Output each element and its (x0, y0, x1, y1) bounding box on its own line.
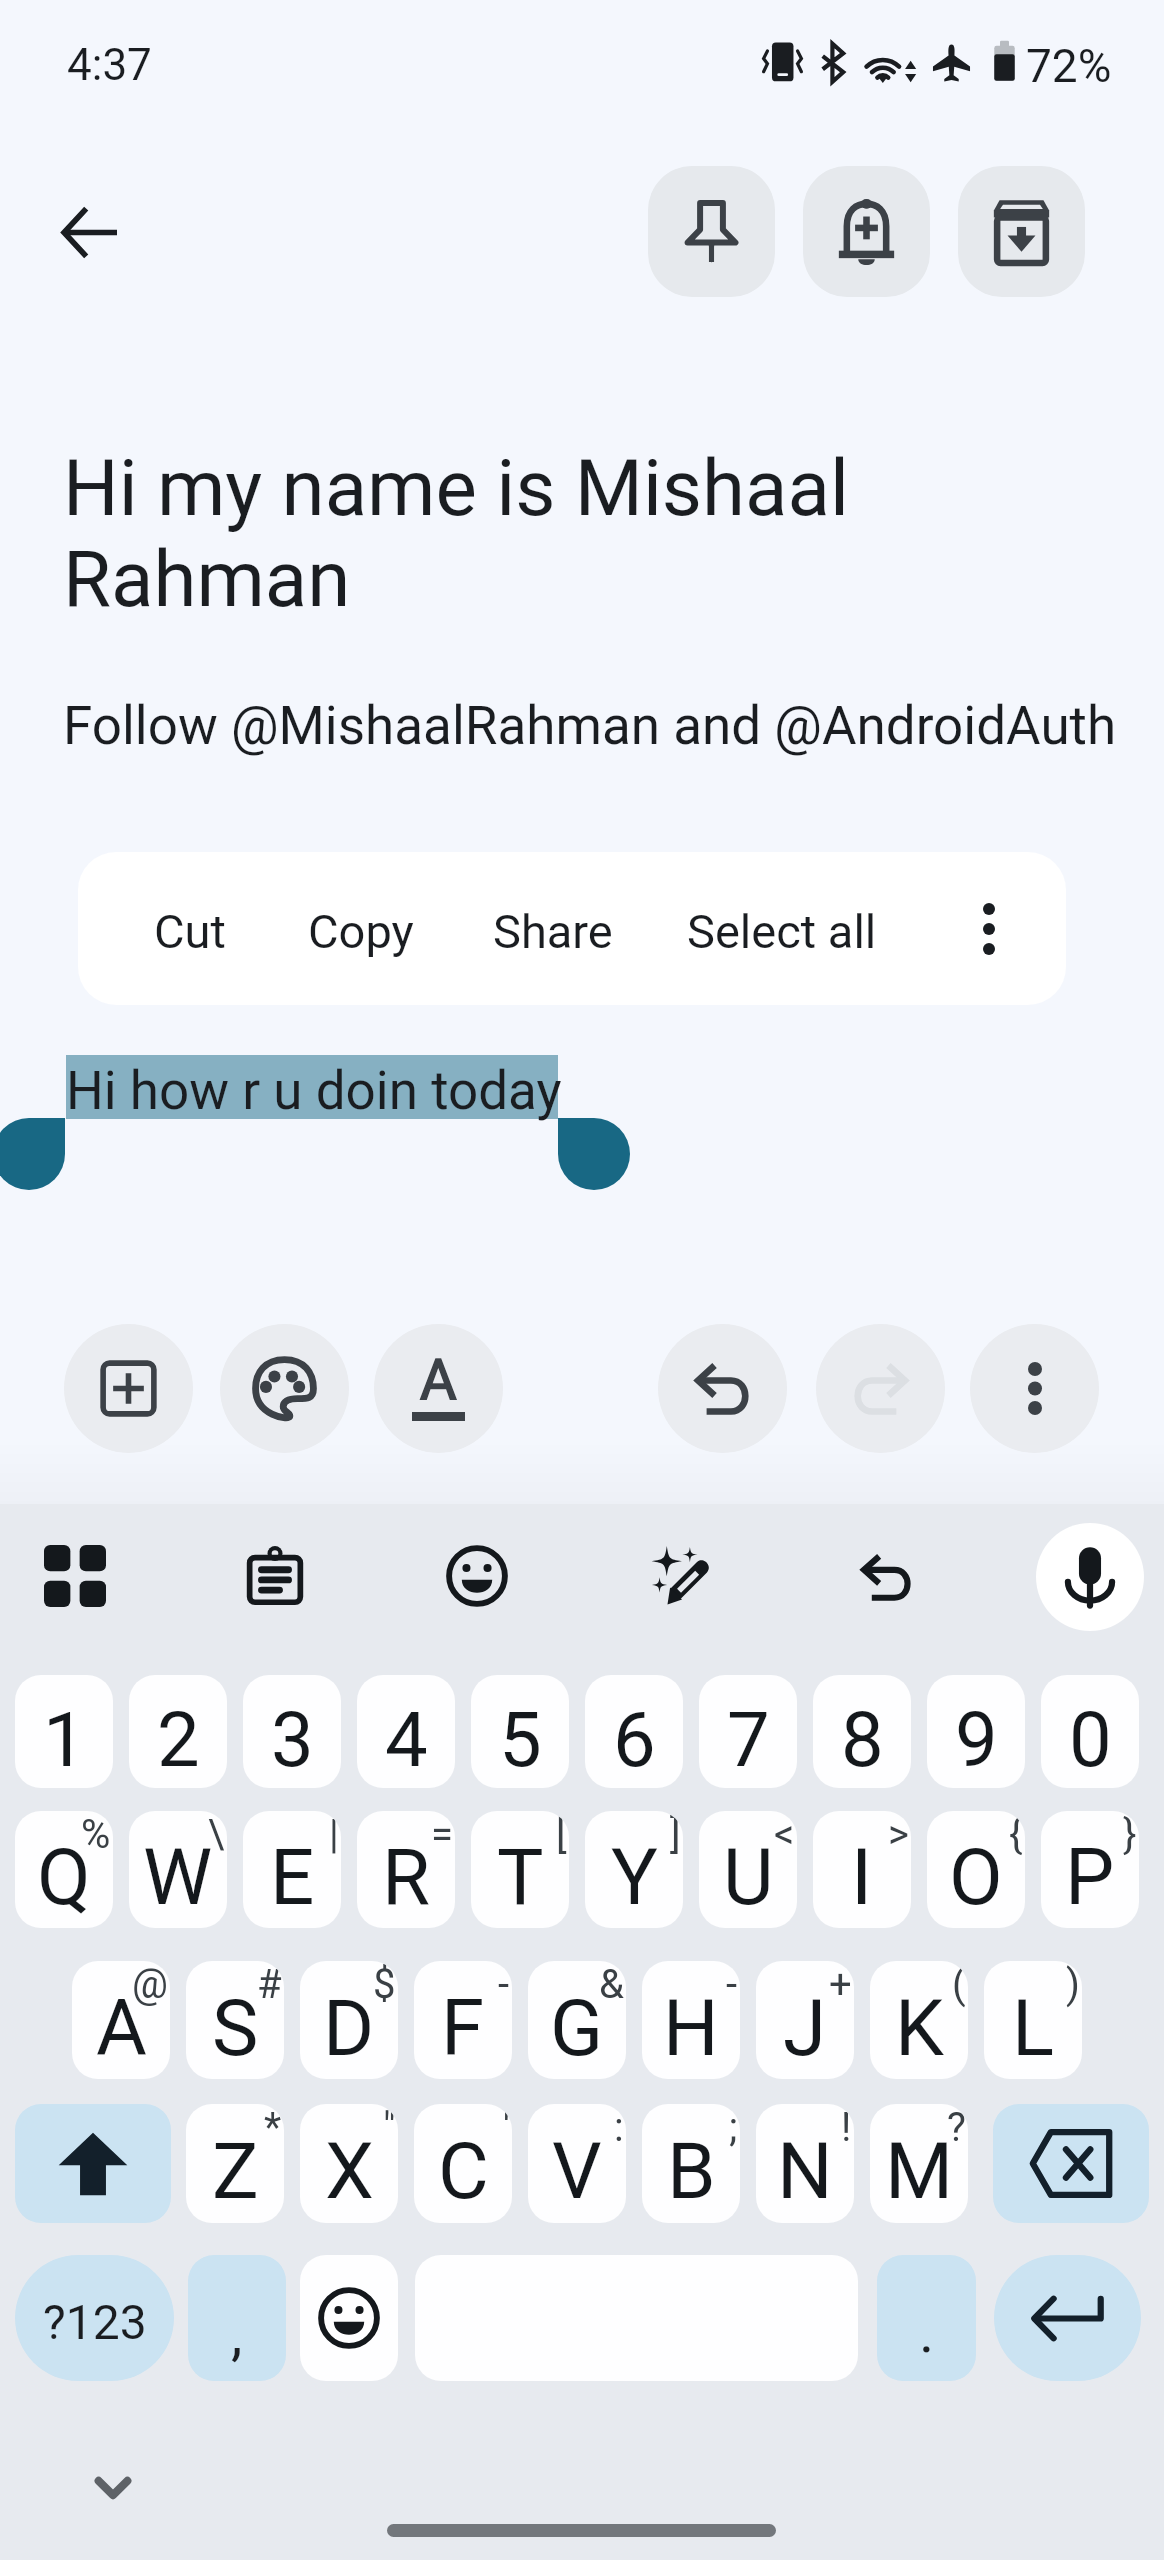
button[interactable]: More (970, 1324, 1099, 1453)
button[interactable]: Emoji (423, 1522, 531, 1630)
staticText: ?123 (43, 2294, 147, 2350)
button[interactable]: Magic compose (627, 1522, 735, 1630)
staticText: 0 (1069, 1695, 1112, 1784)
button[interactable]: Archive (958, 166, 1085, 297)
button[interactable]: C (414, 2104, 512, 2223)
staticText: ) (1066, 1961, 1080, 2008)
button[interactable]: P (1041, 1811, 1139, 1928)
staticText: Q (37, 1832, 91, 1923)
button[interactable]: D (300, 1961, 398, 2079)
button[interactable]: Hide keyboard (68, 2443, 158, 2533)
button[interactable]: 8 (813, 1675, 911, 1788)
button[interactable]: Formatting (374, 1324, 503, 1453)
button[interactable]: H (642, 1961, 740, 2079)
button[interactable]: Undo (658, 1324, 787, 1453)
staticText: M (885, 2126, 954, 2217)
button[interactable]: Select all (667, 852, 897, 1005)
button[interactable]: Add (64, 1324, 193, 1453)
button[interactable]: X (300, 2104, 398, 2223)
button[interactable]: Shift (15, 2104, 171, 2223)
button[interactable]: 0 (1041, 1675, 1139, 1788)
staticText: \ (208, 1811, 225, 1858)
button[interactable]: A (72, 1961, 170, 2079)
button[interactable]: Back (40, 182, 140, 282)
staticText: > (888, 1811, 909, 1858)
button[interactable]: 6 (585, 1675, 683, 1788)
button[interactable]: Emoji (300, 2255, 398, 2381)
button[interactable]: Enter (994, 2255, 1141, 2381)
button[interactable]: G (528, 1961, 626, 2079)
staticText: W (143, 1832, 213, 1923)
button[interactable]: 1 (15, 1675, 113, 1788)
staticText: O (949, 1832, 1003, 1923)
staticText: ( (952, 1961, 966, 2008)
button[interactable]: Reminder (803, 166, 930, 297)
button[interactable]: K (870, 1961, 968, 2079)
button[interactable]: Y (585, 1811, 683, 1928)
button[interactable]: More options (935, 852, 1043, 1005)
staticText: Z (212, 2126, 259, 2217)
button[interactable]: , (188, 2255, 286, 2381)
button[interactable]: S (186, 1961, 284, 2079)
button[interactable]: 7 (699, 1675, 797, 1788)
staticText: Follow @MishaalRahman and @AndroidAuth (63, 695, 1117, 757)
staticText: , (231, 2300, 243, 2368)
staticText: ! (841, 2104, 852, 2151)
button[interactable]: Backspace (993, 2104, 1149, 2223)
button[interactable]: I (813, 1811, 911, 1928)
staticText: @ (132, 1961, 168, 2008)
button[interactable]: W (129, 1811, 227, 1928)
button[interactable]: Pin (648, 166, 775, 297)
button[interactable]: Voice input (1036, 1523, 1144, 1631)
button[interactable]: L (984, 1961, 1082, 2079)
button[interactable]: 2 (129, 1675, 227, 1788)
staticText: $ (373, 1961, 396, 2008)
button[interactable]: 4 (357, 1675, 455, 1788)
button[interactable]: T (471, 1811, 569, 1928)
staticText: . (919, 2298, 935, 2366)
button[interactable]: Apps (21, 1522, 129, 1630)
button[interactable]: Copy (286, 852, 435, 1005)
button[interactable]: Clipboard (221, 1522, 329, 1630)
button[interactable]: N (756, 2104, 854, 2223)
button[interactable]: J (756, 1961, 854, 2079)
button[interactable]: Q (15, 1811, 113, 1928)
staticText: H (663, 1983, 719, 2074)
button[interactable]: 9 (927, 1675, 1025, 1788)
button[interactable]: V (528, 2104, 626, 2223)
staticText: 8 (841, 1695, 884, 1784)
button[interactable]: Z (186, 2104, 284, 2223)
button[interactable]: F (414, 1961, 512, 2079)
button[interactable]: M (870, 2104, 968, 2223)
staticText: ' (503, 2104, 510, 2151)
staticText: I (851, 1832, 873, 1923)
button[interactable]: ?123 (15, 2255, 174, 2381)
staticText: N (777, 2126, 833, 2217)
button[interactable]: U (699, 1811, 797, 1928)
button[interactable]: Undo (832, 1523, 940, 1631)
button[interactable]: Share (473, 852, 633, 1005)
button[interactable]: O (927, 1811, 1025, 1928)
staticText: [ (556, 1811, 567, 1858)
staticText: % (81, 1811, 111, 1858)
button[interactable]: B (642, 2104, 740, 2223)
button[interactable]: . (877, 2255, 976, 2381)
staticText: & (599, 1961, 624, 2008)
staticText: C (438, 2126, 489, 2217)
button[interactable]: Redo (816, 1324, 945, 1453)
button[interactable]: Cut (136, 852, 244, 1005)
staticText: : (614, 2104, 624, 2151)
button[interactable]: R (357, 1811, 455, 1928)
staticText: { (1009, 1811, 1023, 1858)
button[interactable]: E (243, 1811, 341, 1928)
button[interactable]: Color palette (220, 1324, 349, 1453)
button[interactable]: 3 (243, 1675, 341, 1788)
staticText: K (895, 1983, 944, 2074)
staticText: S (212, 1983, 259, 2074)
staticText: | (329, 1811, 339, 1858)
staticText: ; (729, 2104, 738, 2151)
button[interactable]: 5 (471, 1675, 569, 1788)
staticText: " (383, 2104, 396, 2151)
staticText: ] (670, 1811, 681, 1858)
